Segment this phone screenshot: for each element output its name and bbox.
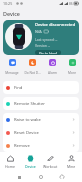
staticText: Device: [3, 10, 20, 17]
button[interactable]: Home: [0, 152, 20, 172]
staticText: 10:25: [3, 1, 13, 6]
staticText: Remote Shutter: [14, 101, 45, 107]
staticText: 86: [69, 2, 73, 6]
staticText: Alarm: [48, 71, 57, 75]
staticText: Reset Device: [14, 130, 39, 136]
button[interactable]: Do Not D...: [22, 59, 42, 75]
staticText: Raise to wake: [14, 117, 41, 123]
staticText: Home: [5, 164, 15, 169]
button[interactable]: Mine: [61, 152, 82, 172]
button[interactable]: Raise to wake: [3, 113, 79, 126]
button[interactable]: Device: [20, 152, 40, 172]
button[interactable]: Remove: [3, 139, 79, 152]
staticText: Last synced: --: [35, 37, 58, 42]
button[interactable]: Find: [3, 81, 79, 94]
button[interactable]: Alarm: [42, 59, 62, 75]
button[interactable]: Message: [2, 59, 22, 75]
button[interactable]: Workout: [40, 152, 61, 172]
button[interactable]: More: [62, 59, 82, 75]
staticText: Version --: [35, 43, 50, 48]
staticText: Device disconnected: [35, 22, 76, 28]
staticText: Mine: [67, 164, 76, 169]
staticText: Workout: [43, 164, 58, 169]
button[interactable]: Reset Device: [3, 126, 79, 139]
staticText: Remove: [14, 143, 30, 149]
button[interactable]: Go to bind: [35, 50, 61, 55]
staticText: N/A: [35, 29, 42, 34]
staticText: Go to bind: [39, 51, 57, 54]
other: Home: [39, 175, 43, 179]
staticText: Do Not D...: [24, 71, 41, 75]
button[interactable]: Remote Shutter: [3, 97, 79, 110]
staticText: Device: [25, 164, 36, 169]
staticText: Message: [5, 71, 19, 75]
staticText: More: [68, 71, 76, 75]
staticText: Find: [14, 85, 23, 91]
button[interactable]: Device disconnected: [3, 20, 79, 55]
other: Back: [60, 175, 64, 179]
